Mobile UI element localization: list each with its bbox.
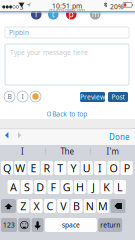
staticText: B <box>73 199 80 213</box>
staticText: C <box>46 199 53 213</box>
button[interactable]: The <box>45 145 90 158</box>
button[interactable]: A <box>8 180 20 194</box>
staticText: V <box>60 199 66 213</box>
button[interactable]: I <box>94 161 106 175</box>
button[interactable]: Share on Facebook <box>31 9 41 19</box>
staticText: Post <box>111 93 124 101</box>
staticText: P <box>124 161 130 175</box>
button[interactable]: G <box>61 180 73 194</box>
button[interactable]: R <box>41 161 53 175</box>
button[interactable]: Shift <box>1 199 16 213</box>
button[interactable]: Delete <box>110 199 125 213</box>
staticText: Type your message here <box>10 48 88 57</box>
button[interactable]: return <box>98 218 122 232</box>
staticText: space <box>62 221 80 229</box>
button[interactable]: O <box>107 161 119 175</box>
staticText: p <box>69 9 74 19</box>
staticText: S <box>24 180 30 194</box>
staticText: t <box>52 9 55 19</box>
button[interactable]: Share by email <box>90 9 100 19</box>
staticText: R <box>43 161 50 175</box>
button[interactable]: Dictation <box>32 218 44 232</box>
button[interactable]: N <box>84 199 96 213</box>
staticText: X <box>34 199 40 213</box>
button[interactable]: X <box>31 199 43 213</box>
staticText: I <box>21 92 23 101</box>
button[interactable]: D <box>34 180 46 194</box>
staticText: B <box>7 92 11 101</box>
button[interactable]: L <box>114 180 126 194</box>
staticText: D <box>36 180 44 194</box>
button[interactable]: S <box>21 180 33 194</box>
staticText: K <box>103 180 110 194</box>
button[interactable]: E <box>28 161 40 175</box>
staticText: L <box>117 180 123 194</box>
staticText: f <box>35 9 38 19</box>
button[interactable]: Post <box>108 92 128 102</box>
button[interactable]: Type your message here <box>5 44 129 85</box>
button[interactable]: Done <box>104 132 130 142</box>
button[interactable]: M <box>97 199 109 213</box>
button[interactable]: P <box>121 161 133 175</box>
button[interactable]: space <box>45 218 97 232</box>
button[interactable]: Preview <box>80 92 105 102</box>
button[interactable]: B <box>70 199 82 213</box>
button[interactable]: I <box>0 145 45 158</box>
staticText: N <box>86 199 94 213</box>
staticText: Z <box>20 199 26 213</box>
staticText: I'm <box>106 146 118 157</box>
button[interactable]: Emoji keyboard <box>18 218 30 232</box>
staticText: Done <box>109 132 130 142</box>
button[interactable]: Format I <box>17 91 28 102</box>
button[interactable]: V <box>57 199 69 213</box>
staticText: W <box>15 161 25 175</box>
staticText: 10:51 pm <box>52 1 82 10</box>
button[interactable]: Back to top <box>0 110 135 118</box>
staticText: 3 <box>19 2 23 11</box>
button[interactable]: I'm <box>90 145 135 158</box>
button[interactable]: C <box>44 199 56 213</box>
button[interactable]: K <box>101 180 113 194</box>
staticText: T <box>57 161 63 175</box>
button[interactable]: F <box>47 180 59 194</box>
staticText: Pipbin <box>9 28 29 37</box>
button[interactable]: Share on Pinterest <box>66 9 76 19</box>
staticText: A <box>10 180 17 194</box>
button[interactable]: Pipbin <box>5 27 129 38</box>
staticText: return <box>100 221 120 229</box>
button[interactable]: T <box>54 161 66 175</box>
button[interactable]: Y <box>67 161 79 175</box>
staticText: mumsnet.com <box>49 6 85 13</box>
staticText: 20% <box>110 2 124 11</box>
staticText: m <box>92 9 99 19</box>
button[interactable]: J <box>87 180 99 194</box>
button[interactable]: Format B <box>4 91 15 102</box>
button[interactable]: Q <box>1 161 13 175</box>
button[interactable]: W <box>14 161 26 175</box>
staticText: M <box>98 199 108 213</box>
staticText: The <box>60 146 74 157</box>
staticText: G <box>63 180 71 194</box>
staticText: J <box>92 180 95 194</box>
staticText: 123 <box>3 221 15 229</box>
staticText: O <box>109 161 117 175</box>
staticText: E <box>31 161 37 175</box>
staticText: I <box>98 161 102 175</box>
staticText: Preview <box>80 93 105 101</box>
staticText: F <box>50 180 56 194</box>
button[interactable]: Next field <box>18 132 28 142</box>
staticText: Back to top <box>52 110 87 118</box>
button[interactable]: Share on Twitter <box>48 9 58 19</box>
staticText: H <box>76 180 84 194</box>
button[interactable]: Previous field <box>5 132 15 142</box>
staticText: I <box>21 146 24 157</box>
staticText: Y <box>70 161 76 175</box>
button[interactable]: 123 <box>1 218 17 232</box>
button[interactable]: H <box>74 180 86 194</box>
staticText: U <box>83 161 91 175</box>
button[interactable]: Z <box>17 199 29 213</box>
staticText: Q <box>3 161 11 175</box>
button[interactable]: Insert emoji <box>30 91 41 102</box>
button[interactable]: U <box>81 161 93 175</box>
